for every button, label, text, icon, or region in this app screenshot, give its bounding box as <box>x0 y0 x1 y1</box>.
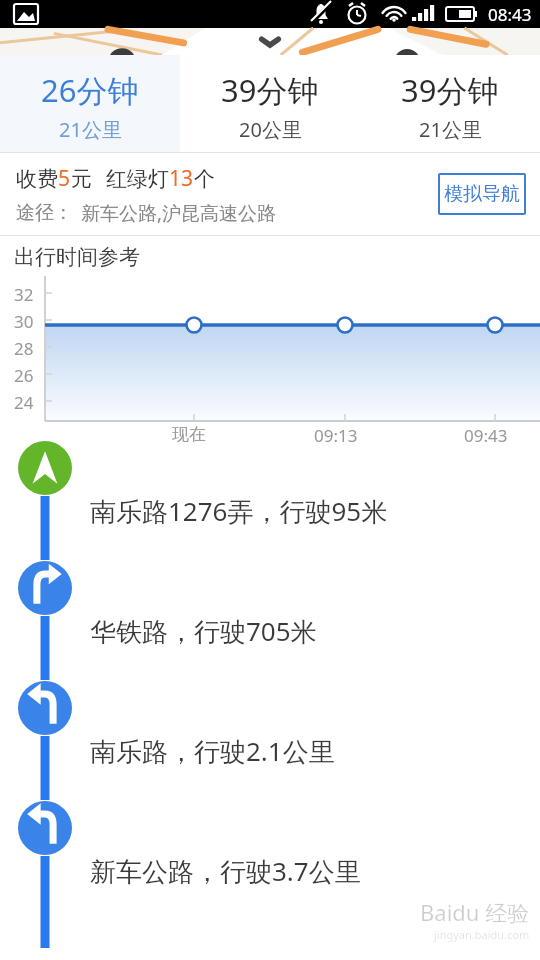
button[interactable]: 模拟导航 <box>438 173 526 215</box>
staticText: 26 <box>14 364 34 387</box>
staticText: 21公里 <box>419 116 482 143</box>
button[interactable]: Turn left <box>0 681 540 801</box>
button[interactable]: 26分钟 <box>0 55 180 152</box>
staticText: 元 <box>71 166 92 192</box>
staticText: 13 <box>169 164 194 193</box>
staticText: 39分钟 <box>221 69 319 111</box>
staticText: 09:13 <box>314 424 358 447</box>
button[interactable]: Collapse map <box>247 29 293 55</box>
staticText: 09:43 <box>464 424 508 447</box>
staticText: 途径： <box>16 201 73 225</box>
button[interactable]: Turn left <box>18 801 72 855</box>
button[interactable]: 39分钟 <box>360 55 540 152</box>
button[interactable]: Turn right <box>0 561 540 681</box>
button[interactable]: Turn left <box>0 801 540 921</box>
staticText: 08:43 <box>488 3 532 26</box>
staticText: 收费 <box>16 166 58 192</box>
staticText: 华铁路，行驶705米 <box>90 613 317 649</box>
staticText: 现在 <box>172 424 206 445</box>
button[interactable]: Turn left <box>18 681 72 735</box>
staticText: 新车公路，行驶3.7公里 <box>90 853 361 889</box>
button[interactable]: 39分钟 <box>180 55 360 152</box>
button[interactable]: Start <box>0 441 540 561</box>
staticText: jingyan.baidu.com <box>434 927 530 942</box>
staticText: Baidu 经验 <box>420 897 530 927</box>
staticText: 南乐路，行驶2.1公里 <box>90 733 335 769</box>
staticText: 30 <box>14 310 34 333</box>
staticText: 红绿灯 <box>106 166 169 192</box>
staticText: 新车公路,沪昆高速公路 <box>81 200 277 226</box>
staticText: 28 <box>14 337 34 360</box>
staticText: 21公里 <box>59 116 122 143</box>
button[interactable]: Turn right <box>18 561 72 615</box>
staticText: 个 <box>194 166 215 192</box>
button[interactable]: Start <box>18 441 72 495</box>
staticText: 24 <box>14 391 34 414</box>
staticText: 南乐路1276弄，行驶95米 <box>90 493 388 529</box>
staticText: 20公里 <box>239 116 302 143</box>
staticText: 39分钟 <box>401 69 499 111</box>
staticText: 模拟导航 <box>444 182 520 206</box>
staticText: 5 <box>58 164 71 193</box>
staticText: 32 <box>14 283 34 306</box>
staticText: 出行时间参考 <box>14 244 140 270</box>
staticText: 26分钟 <box>41 69 139 111</box>
